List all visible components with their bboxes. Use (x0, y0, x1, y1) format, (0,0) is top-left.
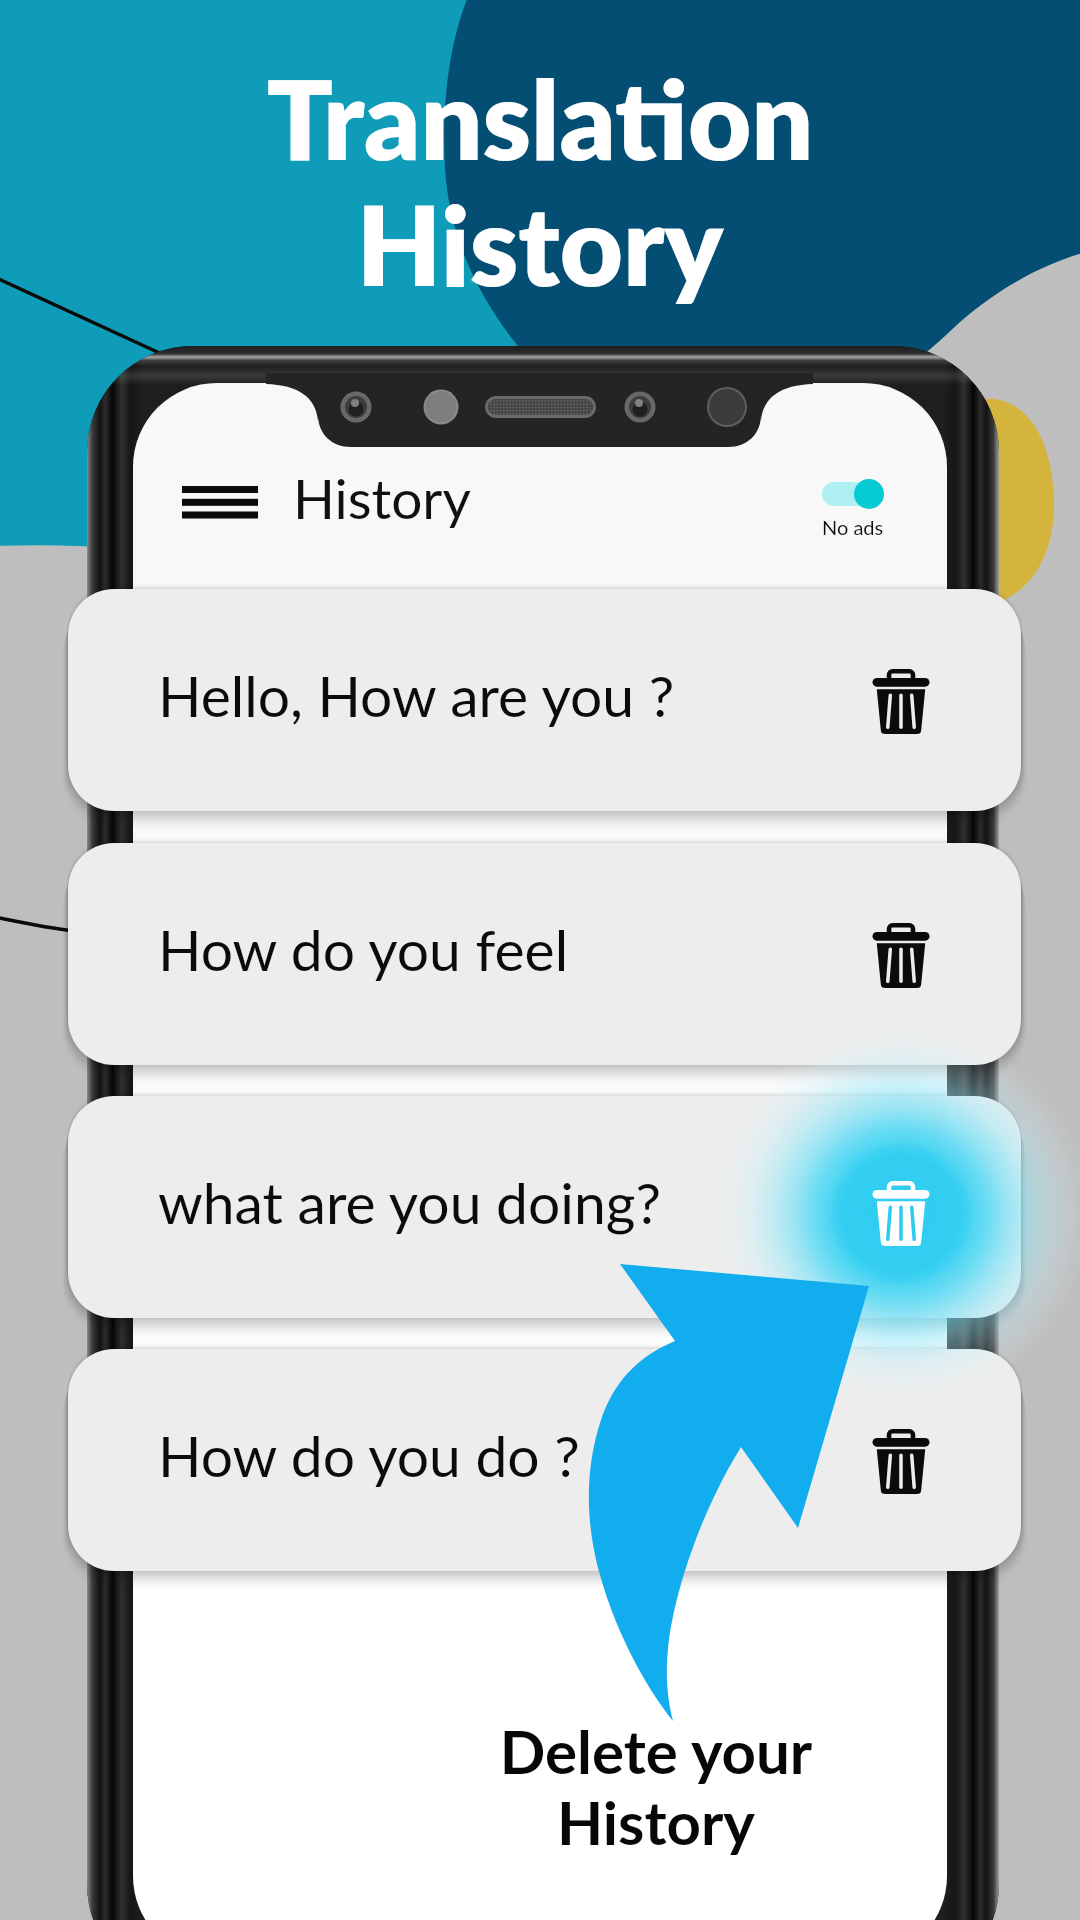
button[interactable]: Delete (840, 641, 962, 763)
staticText: History (293, 465, 471, 531)
staticText: Delete your History (396, 1715, 916, 1857)
staticText: Translation History (0, 52, 1080, 310)
staticText: How do you feel (158, 915, 569, 983)
button[interactable]: Delete (840, 1148, 962, 1270)
button[interactable]: Menu (158, 465, 282, 545)
button[interactable]: No ads toggle (807, 478, 899, 534)
staticText: No ads (822, 515, 884, 539)
button[interactable]: Delete (840, 895, 962, 1017)
button[interactable]: Delete (840, 1401, 962, 1523)
staticText: Hello, How are you ? (158, 661, 675, 729)
staticText: what are you doing? (158, 1168, 661, 1236)
staticText: How do you do ? (158, 1421, 580, 1489)
